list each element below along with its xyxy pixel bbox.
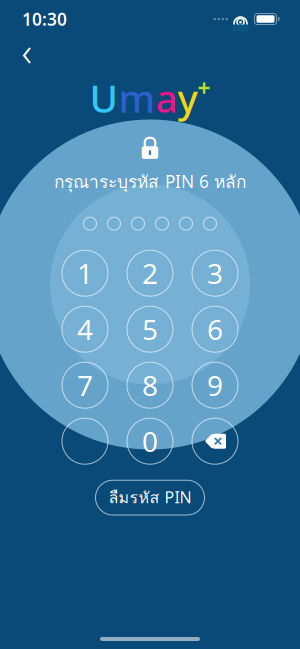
staticText: 6 xyxy=(207,311,223,348)
button[interactable]: 2 xyxy=(127,250,173,296)
staticText: 4 xyxy=(77,311,93,348)
staticText: m xyxy=(118,72,155,123)
button[interactable]: 0 xyxy=(127,418,173,464)
staticText: y xyxy=(177,72,197,123)
button[interactable]: 4 xyxy=(62,306,108,352)
button[interactable]: 8 xyxy=(127,362,173,408)
staticText: 1 xyxy=(77,255,93,292)
staticText: 5 xyxy=(142,311,158,348)
button[interactable]: 1 xyxy=(62,250,108,296)
button[interactable]: 5 xyxy=(127,306,173,352)
staticText: 7 xyxy=(77,367,93,404)
button[interactable]: ลืมรหัส PIN xyxy=(95,480,204,515)
button[interactable]: 6 xyxy=(192,306,238,352)
staticText: 0 xyxy=(142,423,158,460)
staticText: 9 xyxy=(207,367,223,404)
staticText: 8 xyxy=(142,367,158,404)
staticText: a xyxy=(155,72,177,123)
staticText: 10:30 xyxy=(22,7,67,30)
staticText: U xyxy=(89,72,118,123)
staticText: ‹ xyxy=(21,24,32,77)
button[interactable]: 3 xyxy=(192,250,238,296)
staticText: 3 xyxy=(207,255,223,292)
button[interactable]: 9 xyxy=(192,362,238,408)
button[interactable]: Delete xyxy=(192,418,238,464)
button[interactable]: Back xyxy=(10,34,44,68)
staticText: 2 xyxy=(142,255,158,292)
staticText: + xyxy=(197,73,210,103)
button[interactable]: 7 xyxy=(62,362,108,408)
staticText: กรุณาระบุรหัส PIN 6 หลัก xyxy=(54,168,246,195)
staticText: ลืมรหัส PIN xyxy=(108,485,191,510)
